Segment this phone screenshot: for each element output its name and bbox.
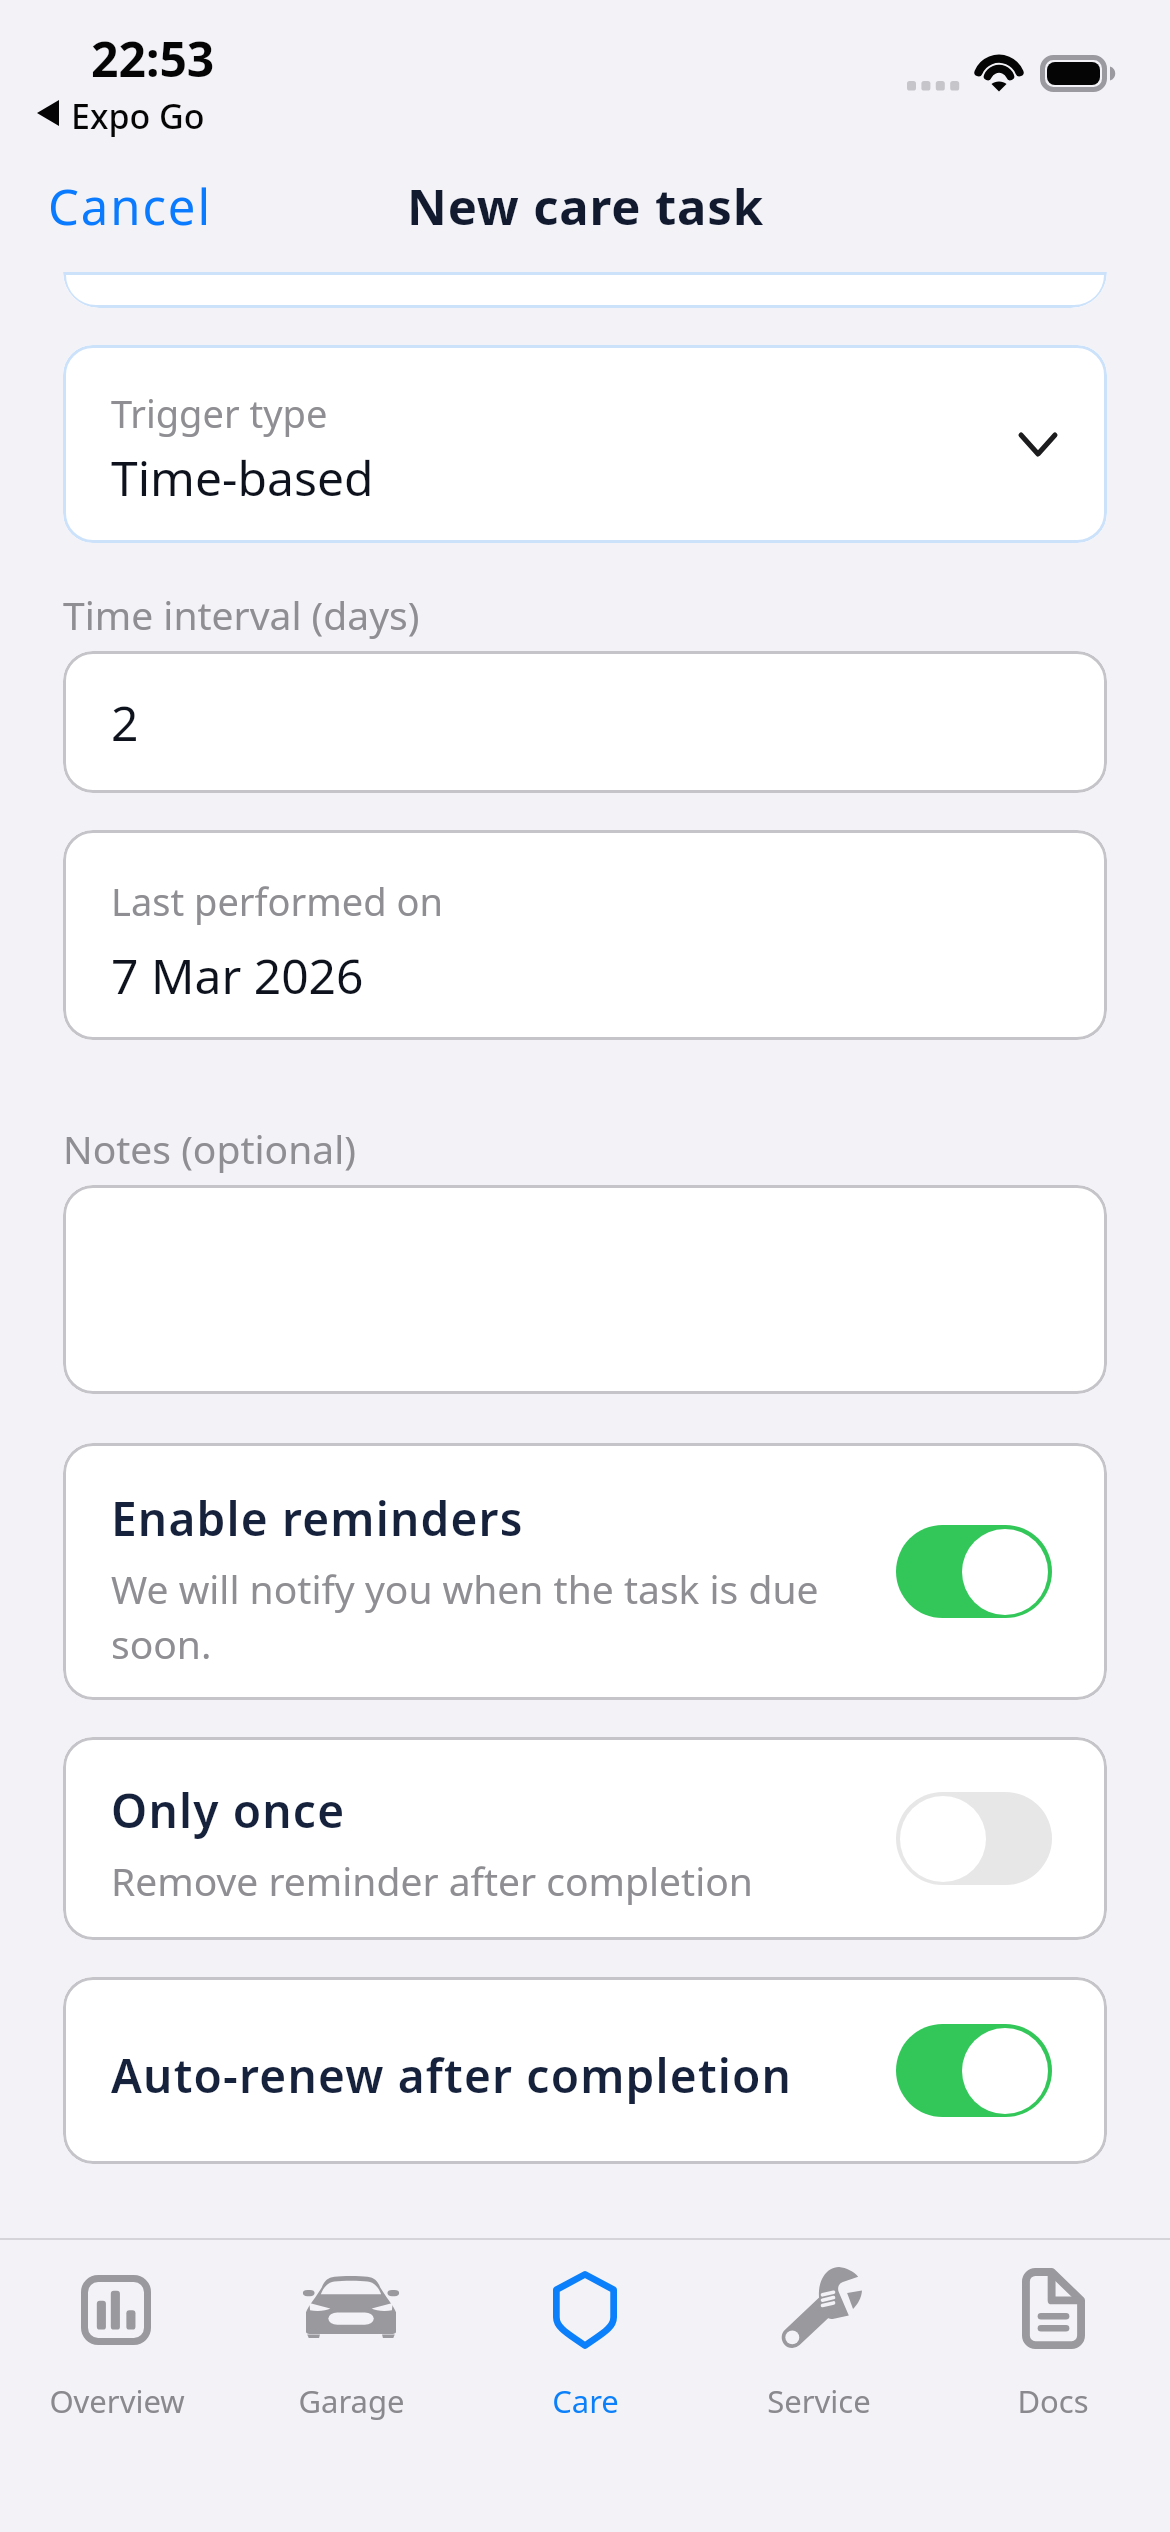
staticText: New care task (407, 173, 764, 240)
staticText: Time interval (days) (63, 588, 420, 641)
button[interactable]: Service (702, 2242, 936, 2532)
button[interactable]: Switch on (896, 1525, 1052, 1618)
button[interactable]: Enable reminders (63, 1443, 1107, 1700)
staticText: Overview (49, 2380, 185, 2422)
button[interactable]: 2 (63, 651, 1107, 793)
button[interactable]: Last performed on (63, 830, 1107, 1040)
button[interactable] (63, 1185, 1107, 1394)
staticText: Cancel (48, 173, 212, 240)
button[interactable]: Switch off (896, 1792, 1052, 1885)
staticText: We will notify you when the task is due … (111, 1562, 891, 1671)
button[interactable]: Docs (936, 2242, 1170, 2532)
staticText: 7 Mar 2026 (111, 943, 364, 1008)
staticText: Last performed on (111, 875, 443, 927)
button[interactable]: Only once (63, 1737, 1107, 1940)
button[interactable]: Switch on (896, 2024, 1052, 2117)
staticText: Time-based (111, 445, 374, 510)
staticText: 22:53 (91, 26, 215, 91)
staticText: Only once (111, 1779, 346, 1842)
staticText: Care (552, 2380, 619, 2422)
button[interactable]: Care (468, 2242, 702, 2532)
staticText: Garage (298, 2380, 405, 2422)
staticText: Notes (optional) (63, 1122, 356, 1175)
staticText: Remove reminder after completion (111, 1854, 753, 1907)
staticText: Expo Go (71, 93, 205, 139)
button[interactable]: Overview (0, 2242, 234, 2532)
staticText: Trigger type (111, 387, 328, 439)
staticText: 2 (111, 690, 139, 755)
staticText: Auto-renew after completion (111, 2044, 793, 2107)
staticText: Docs (1017, 2380, 1089, 2422)
button[interactable]: Auto-renew after completion (63, 1977, 1107, 2164)
staticText: Service (767, 2380, 871, 2422)
button[interactable]: Trigger type (63, 345, 1107, 543)
button[interactable]: Garage (234, 2242, 468, 2532)
button[interactable]: Cancel (34, 161, 226, 252)
staticText: Enable reminders (111, 1487, 524, 1550)
